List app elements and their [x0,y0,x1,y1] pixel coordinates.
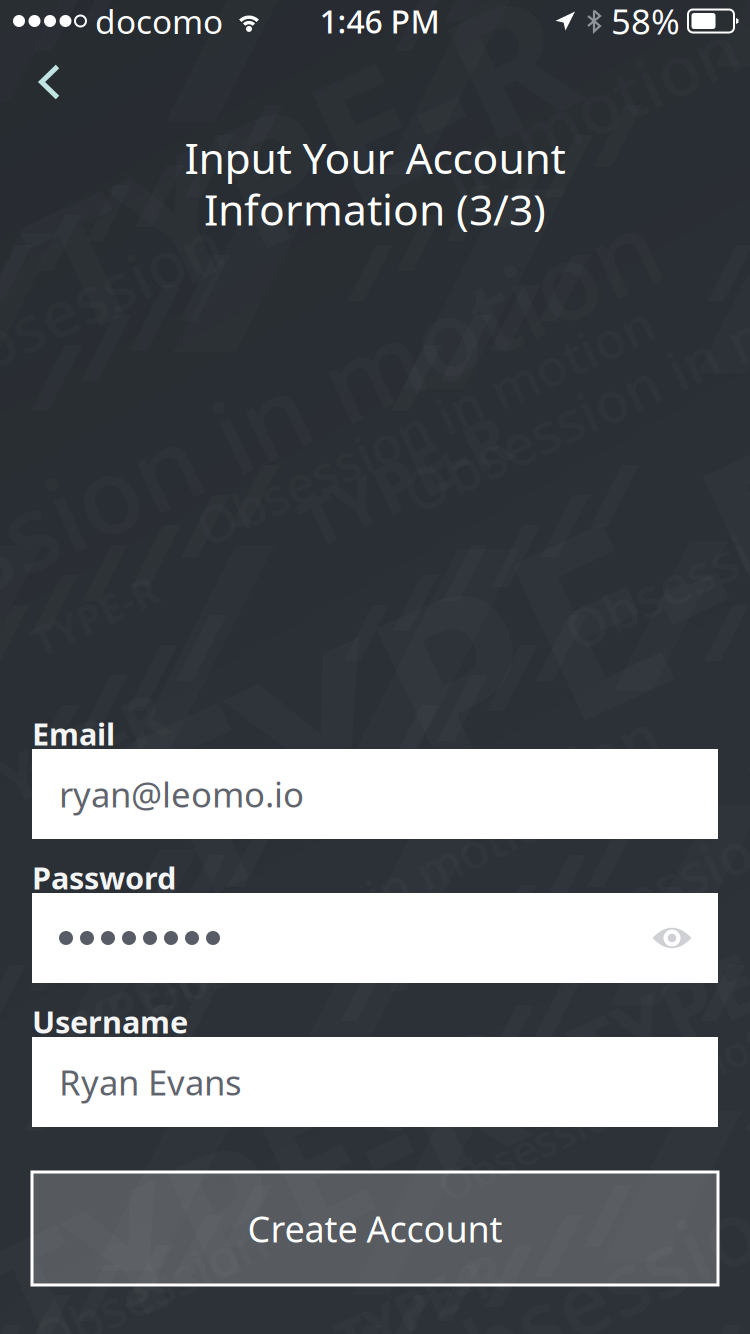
staticText: TYPE-R [0,1083,532,1307]
staticText: 58% [611,0,680,44]
staticText: Create Account [247,1205,502,1252]
staticText: docomo [95,0,223,43]
staticText: TYPE-R [92,501,750,819]
staticText: Password [32,857,176,898]
staticText: Obsession [24,1256,276,1324]
staticText: Obsession in motion [121,873,589,937]
staticText: TYPE-R [561,945,750,1055]
staticText: TYPE-R [49,973,210,1037]
button[interactable]: Show password [652,909,718,967]
button[interactable]: Create Account [0,1172,718,1285]
staticText: in motion [430,64,749,156]
staticText: TYPE-R [13,47,587,273]
staticText: Obsession [517,853,750,927]
staticText: Obsession [386,1232,750,1334]
staticText: TYPE-R [0,712,172,797]
staticText: Username [32,1001,188,1042]
button[interactable]: Back [0,42,88,112]
staticText: TYPE-R [330,1270,509,1334]
staticText: Email [32,713,115,754]
staticText: Ryan Evans [59,1059,242,1105]
staticText: Input Your Account [184,129,565,186]
staticText: ryan@leomo.io [59,771,304,817]
staticText: Information (3/3) [204,181,546,237]
staticText: Obsession in motion [420,1072,750,1128]
staticText: motion [455,734,665,816]
staticText: 1:46 PM [319,0,439,42]
